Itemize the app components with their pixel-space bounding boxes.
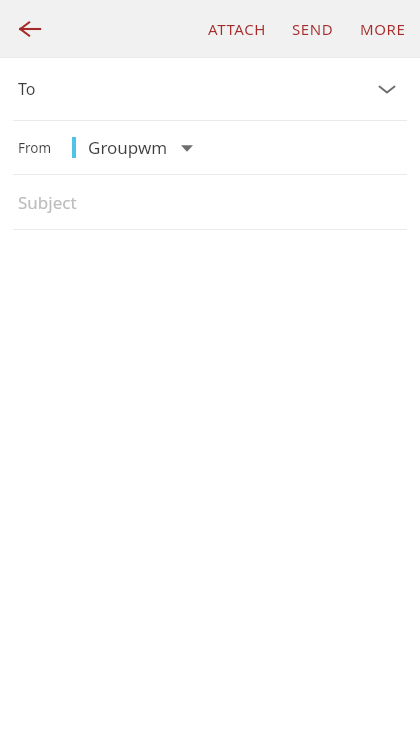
staticText: Subject [18, 191, 77, 214]
button[interactable]: ATTACH [202, 13, 272, 45]
button[interactable]: Back [8, 7, 52, 51]
button[interactable]: From [0, 121, 420, 174]
staticText: To [18, 78, 36, 100]
staticText: SEND [292, 19, 334, 39]
staticText: Groupwm [88, 136, 168, 159]
button[interactable]: Subject [0, 175, 420, 229]
staticText: MORE [360, 19, 406, 39]
button[interactable]: MORE [354, 13, 412, 45]
staticText: From [18, 139, 52, 157]
button[interactable]: SEND [286, 13, 340, 45]
other: Choose account [177, 138, 197, 158]
button[interactable]: To [0, 58, 420, 120]
staticText: ATTACH [208, 19, 266, 39]
button[interactable]: Expand recipients [370, 72, 404, 106]
